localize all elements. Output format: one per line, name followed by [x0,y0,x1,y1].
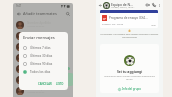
button[interactable]: LISTO [55,81,65,87]
staticText: Enviar mensajes [23,35,55,41]
staticText: 10:30 [151,24,156,26]
button[interactable]: Call [151,2,157,8]
button[interactable]: Back [15,10,22,17]
button[interactable]: New chat [63,73,73,86]
button[interactable]: Programa de ensayo (3)(4... [100,13,158,28]
button[interactable]: Info del grupo [117,86,142,92]
staticText: Últimos 30 días [30,54,53,58]
button[interactable]: Nombre Apellido [16,41,70,52]
staticText: Nombre Apellido [27,54,51,58]
button[interactable]: Últimos 30 días [19,52,68,60]
button[interactable]: Nombre Apellido [16,85,70,96]
staticText: Añadir teammates [23,11,57,16]
button[interactable]: CANCELAR [37,81,53,87]
staticText: Los mensajes y las llamadas están cifrad… [100,33,159,38]
staticText: +34 600, +34 611, +34 6... [111,6,135,9]
staticText: Equipo de N... [111,2,133,6]
staticText: +34 600 00 00 00 [27,47,45,50]
staticText: Nombre Apellido [27,87,51,91]
button[interactable]: Nombre Apellido [16,63,70,74]
staticText: +34 600 00 00 00 [27,69,45,72]
button[interactable]: Últimos 7 días [19,44,68,52]
button[interactable]: Nombre Apellido [16,74,70,85]
staticText: +34 600 00 00 00 [27,36,45,39]
button[interactable]: Últimos 90 días [19,60,68,68]
staticText: 9:41 [16,4,22,8]
button[interactable]: Nombre Apellido [16,52,70,63]
button[interactable]: Nombre Apellido [16,30,70,41]
staticText: Últimos 90 días [30,62,53,66]
button[interactable]: Nombre Apellido [16,19,70,30]
button[interactable]: Search [64,10,71,17]
staticText: Nombre Apellido [27,43,51,47]
staticText: Todos los días [30,70,51,74]
staticText: Programa de ensayo (3)(4... [109,16,148,20]
staticText: 3 páginas · PDF · 280 kB [102,23,124,26]
staticText: CANCELAR [38,82,52,86]
button[interactable]: Todos los días [19,68,68,76]
staticText: Últimos 7 días [30,46,51,50]
staticText: Sei tu aggiungi [117,69,143,74]
staticText: Info del grupo [122,87,141,91]
staticText: LISTO [56,82,64,86]
staticText: Lorem ipsum dolor sit amet consectetur a… [104,75,155,81]
button[interactable]: Back [97,2,103,8]
button[interactable]: Video call [145,2,151,8]
button[interactable]: More options [157,3,162,8]
staticText: +34 600 00 00 00 [27,80,45,83]
